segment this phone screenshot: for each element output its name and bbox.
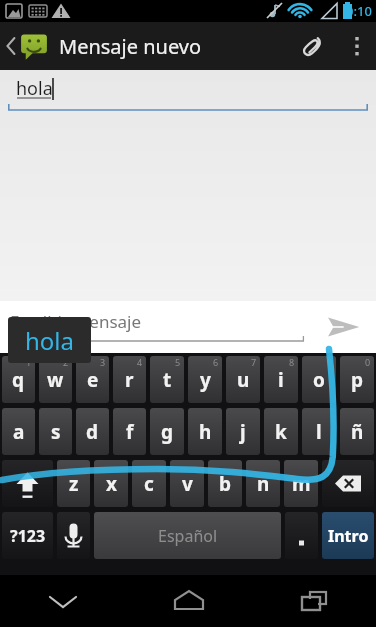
staticText: e — [87, 367, 99, 393]
button[interactable]: d — [76, 408, 109, 455]
staticText: 6 — [213, 356, 219, 368]
button[interactable]: c — [132, 460, 166, 507]
button[interactable]: t — [150, 356, 184, 403]
staticText: 9 — [327, 356, 333, 368]
staticText: a — [13, 419, 25, 445]
button[interactable]: hola — [8, 317, 91, 363]
staticText: d — [86, 419, 99, 445]
button[interactable]: ?123 — [2, 512, 53, 559]
button[interactable]: s — [39, 408, 72, 455]
staticText: i — [278, 367, 284, 393]
button[interactable]: Recientes — [251, 575, 376, 627]
staticText: x — [106, 471, 117, 497]
staticText: k — [275, 419, 287, 445]
button[interactable]: q — [2, 356, 35, 403]
button[interactable]: Borrar — [322, 460, 374, 507]
other: Back — [4, 22, 16, 70]
staticText: Español — [158, 525, 218, 547]
button[interactable]: j — [226, 408, 260, 455]
staticText: l — [316, 419, 322, 445]
button[interactable]: y — [188, 356, 222, 403]
button[interactable]: g — [150, 408, 184, 455]
button[interactable]: f — [113, 408, 146, 455]
button[interactable]: Mayúsculas — [2, 460, 53, 507]
button[interactable]: m — [284, 460, 318, 507]
staticText: 4 — [137, 356, 143, 368]
button[interactable]: Back — [0, 22, 204, 70]
button[interactable]: n — [246, 460, 280, 507]
button[interactable]: w — [39, 356, 72, 403]
button[interactable]: k — [264, 408, 298, 455]
button[interactable]: x — [94, 460, 128, 507]
button[interactable]: Enviar — [310, 301, 376, 353]
button[interactable]: Ocultar teclado — [0, 575, 126, 627]
staticText: 8 — [289, 356, 295, 368]
staticText: Intro — [328, 525, 369, 547]
staticText: t — [163, 367, 172, 393]
staticText: o — [313, 367, 325, 393]
staticText: f — [126, 419, 134, 445]
staticText: p — [351, 367, 364, 393]
staticText: y — [200, 367, 211, 393]
button[interactable]: Más opciones — [338, 22, 376, 70]
button[interactable]: Español — [94, 512, 281, 559]
staticText: q — [12, 367, 25, 393]
button[interactable]: Voz — [57, 512, 90, 559]
staticText: w — [47, 367, 64, 393]
button[interactable]: Escribir mensaje — [0, 301, 376, 353]
button[interactable]: e — [76, 356, 109, 403]
staticText: s — [51, 419, 61, 445]
staticText: hola — [25, 324, 75, 357]
button[interactable]: r — [113, 356, 146, 403]
button[interactable]: v — [170, 460, 204, 507]
button[interactable]: Punto — [285, 512, 318, 559]
staticText: ñ — [351, 419, 364, 445]
staticText: r — [125, 367, 134, 393]
staticText: m — [292, 471, 311, 497]
staticText: 1 — [26, 356, 32, 368]
staticText: 7 — [251, 356, 257, 368]
staticText: hola — [16, 76, 53, 101]
staticText: Escribir mensaje — [10, 310, 142, 333]
button[interactable]: z — [57, 460, 90, 507]
staticText: c — [144, 471, 154, 497]
button[interactable]: Adjuntar — [286, 22, 338, 70]
staticText: h — [199, 419, 212, 445]
staticText: n — [257, 471, 270, 497]
button[interactable]: o — [302, 356, 336, 403]
staticText: j — [240, 419, 246, 445]
button[interactable]: b — [208, 460, 242, 507]
staticText: b — [219, 471, 232, 497]
staticText: 2 — [63, 356, 69, 368]
button[interactable]: h — [188, 408, 222, 455]
staticText: 5 — [175, 356, 181, 368]
button[interactable]: l — [302, 408, 336, 455]
staticText: 0 — [365, 356, 371, 368]
staticText: Mensaje nuevo — [59, 33, 202, 60]
staticText: z — [69, 471, 79, 497]
staticText: ?123 — [10, 525, 46, 547]
button[interactable]: Inicio — [126, 575, 251, 627]
button[interactable]: p — [340, 356, 374, 403]
button[interactable]: Intro — [322, 512, 374, 559]
button[interactable]: i — [264, 356, 298, 403]
staticText: 0:10 — [346, 2, 372, 20]
button[interactable]: u — [226, 356, 260, 403]
button[interactable]: ñ — [340, 408, 374, 455]
button[interactable]: a — [2, 408, 35, 455]
staticText: v — [182, 471, 193, 497]
staticText: 3 — [100, 356, 106, 368]
staticText: g — [161, 419, 174, 445]
staticText: u — [237, 367, 250, 393]
